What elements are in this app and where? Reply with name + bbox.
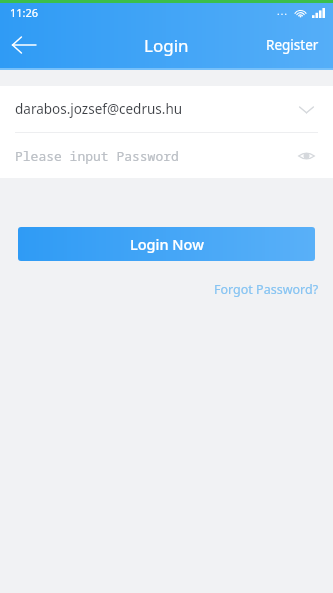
button[interactable]: Register — [252, 26, 333, 64]
button[interactable]: Please input Password — [0, 133, 333, 178]
button[interactable]: Choose account — [293, 96, 319, 122]
button[interactable]: Show password — [293, 143, 319, 169]
button[interactable]: Back — [0, 22, 48, 68]
staticText: darabos.jozsef@cedrus.hu — [15, 100, 293, 118]
staticText: Please input Password — [15, 147, 179, 165]
button[interactable]: Forgot Password? — [200, 275, 333, 304]
staticText: Login — [144, 34, 189, 57]
button[interactable]: Login Now — [18, 227, 315, 261]
staticText: Register — [266, 36, 319, 54]
staticText: Login Now — [130, 234, 204, 254]
button[interactable]: darabos.jozsef@cedrus.hu — [0, 86, 333, 132]
staticText: Forgot Password? — [214, 281, 319, 298]
staticText: 11:26 — [10, 5, 39, 20]
